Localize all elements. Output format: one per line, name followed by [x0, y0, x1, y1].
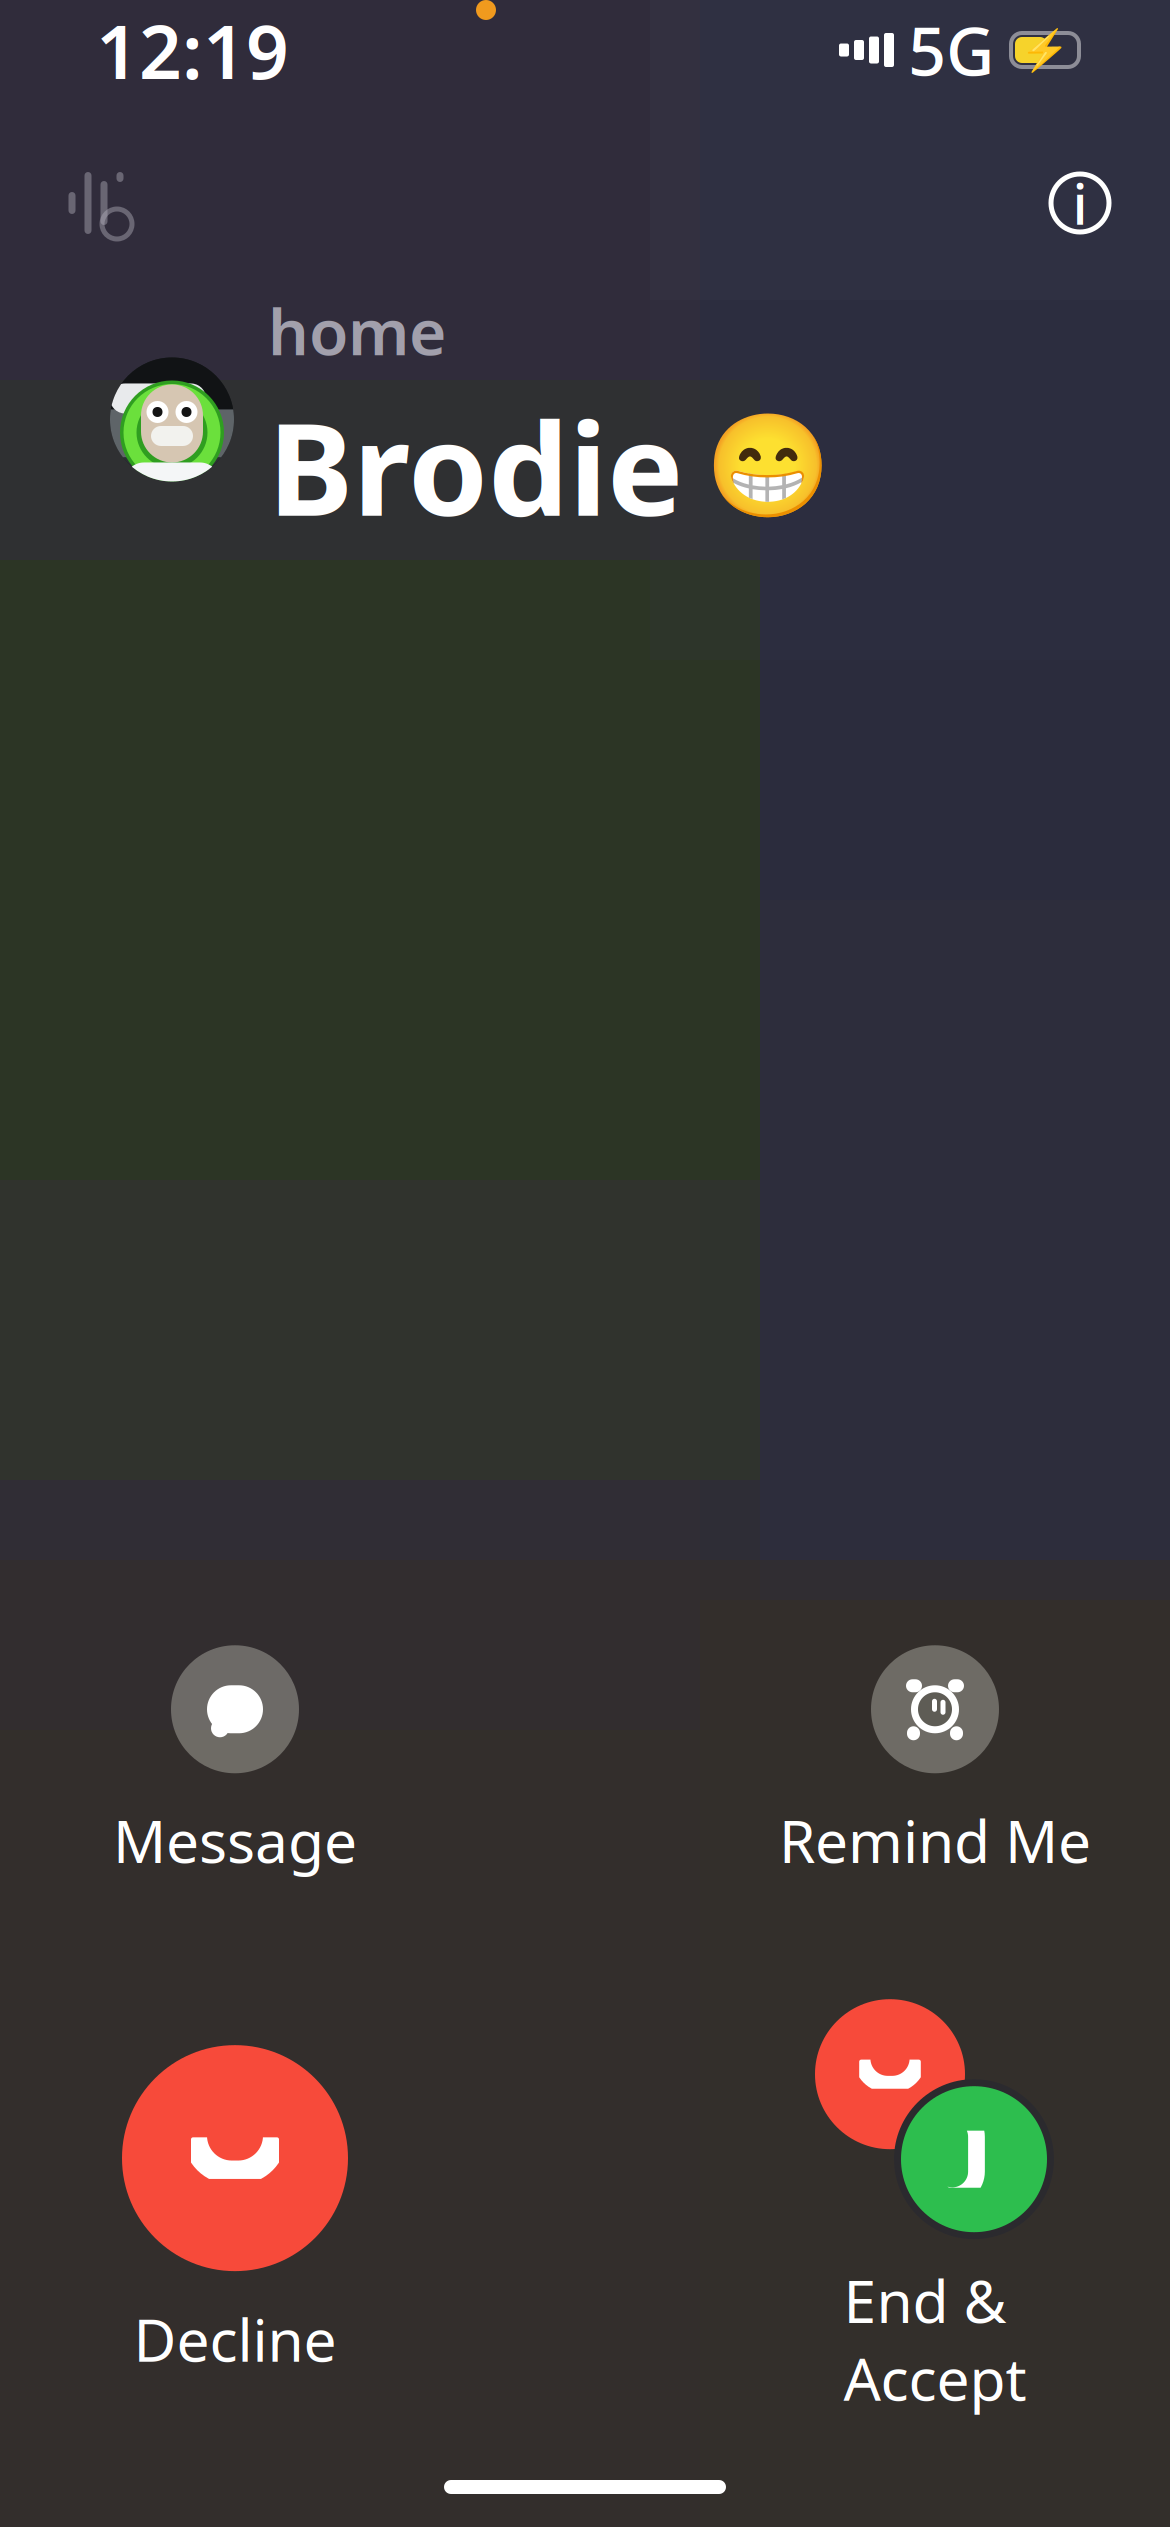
- staticText: 5G: [908, 6, 994, 94]
- button[interactable]: Audio source: [36, 153, 156, 253]
- staticText: Message: [113, 1801, 357, 1879]
- staticText: Brodie: [268, 381, 683, 551]
- button[interactable]: Remind Me: [770, 1645, 1100, 1879]
- staticText: End & Accept: [843, 2261, 1026, 2417]
- staticText: Decline: [133, 2300, 336, 2378]
- staticText: i: [1072, 166, 1087, 240]
- button[interactable]: Call details: [1034, 157, 1126, 249]
- staticText: home: [268, 288, 446, 373]
- staticText: Remind Me: [779, 1801, 1091, 1879]
- button[interactable]: Message: [70, 1645, 400, 1879]
- staticText: ⚡: [1020, 27, 1070, 73]
- button[interactable]: End & Accept: [770, 1999, 1100, 2417]
- staticText: 😁: [705, 408, 831, 524]
- button[interactable]: Decline: [70, 2038, 400, 2378]
- staticText: 12:19: [96, 0, 289, 100]
